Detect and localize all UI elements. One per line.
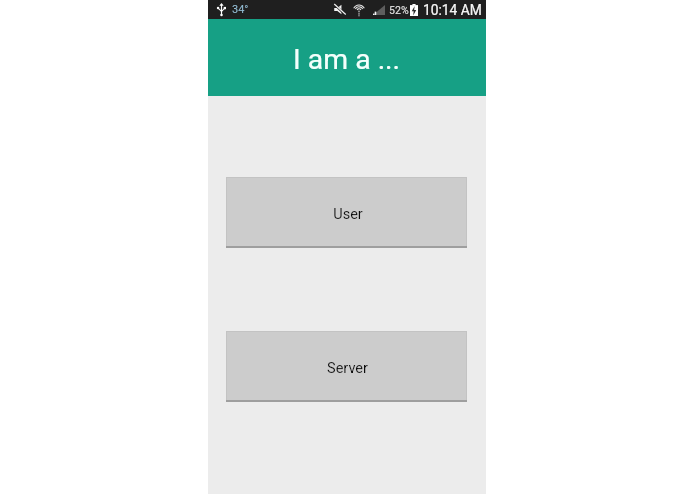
staticText: 52%	[389, 4, 409, 16]
other: Wi-Fi	[353, 4, 365, 16]
other: USB connected	[217, 3, 226, 16]
staticText: I am a ...	[293, 43, 401, 76]
button[interactable]: Server	[226, 331, 467, 402]
staticText: User	[333, 206, 363, 223]
other: Battery charging 52 percent	[410, 4, 418, 16]
staticText: Server	[327, 360, 368, 377]
button[interactable]: User	[226, 177, 467, 248]
staticText: 10:14 AM	[423, 2, 482, 18]
other: Silent mode	[334, 4, 346, 15]
other: Mobile signal	[373, 5, 385, 15]
staticText: 34°	[232, 3, 249, 16]
